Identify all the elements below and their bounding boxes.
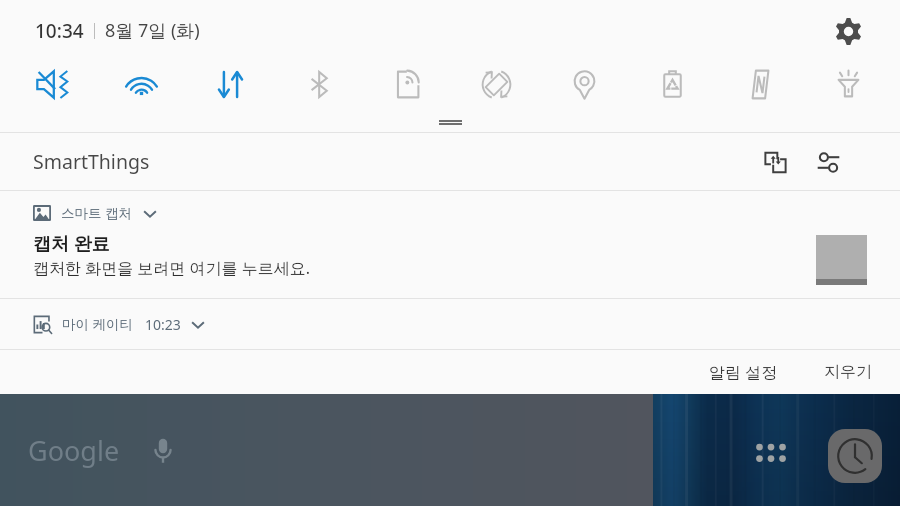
staticText: 10:34 bbox=[35, 18, 84, 44]
button[interactable]: Sound mode bbox=[8, 61, 97, 107]
staticText: 10:23 bbox=[145, 315, 181, 334]
button[interactable]: Bluetooth bbox=[275, 61, 364, 107]
staticText: Google bbox=[28, 432, 120, 469]
staticText: 캡처 완료 bbox=[33, 231, 110, 256]
staticText: 알림 설정 bbox=[709, 361, 778, 383]
button[interactable]: Location bbox=[540, 61, 628, 107]
staticText: 스마트 캡처 bbox=[61, 204, 133, 222]
staticText: 캡처한 화면을 보려면 여기를 누르세요. bbox=[33, 257, 310, 279]
button[interactable]: Smart View bbox=[364, 61, 452, 107]
button[interactable]: Clock bbox=[828, 429, 882, 483]
button[interactable]: 지우기 bbox=[808, 352, 888, 392]
staticText: SmartThings bbox=[33, 148, 150, 175]
button[interactable]: Quick settings bbox=[809, 143, 847, 181]
button[interactable]: Transfer bbox=[756, 143, 794, 181]
button[interactable]: Flashlight bbox=[804, 61, 892, 107]
button[interactable]: Settings bbox=[829, 12, 867, 50]
staticText: 8월 7일 (화) bbox=[105, 18, 200, 43]
button[interactable]: Wi-Fi bbox=[97, 61, 186, 107]
button[interactable]: Apps bbox=[745, 430, 797, 482]
button[interactable]: Power saving mode bbox=[628, 61, 716, 107]
button[interactable]: NFC bbox=[716, 61, 804, 107]
staticText: 지우기 bbox=[824, 362, 872, 382]
button[interactable]: Auto rotate bbox=[452, 61, 540, 107]
button[interactable]: 마이 케이티 bbox=[0, 299, 900, 349]
button[interactable]: 알림 설정 bbox=[693, 351, 794, 393]
staticText: 마이 케이티 bbox=[62, 315, 134, 333]
button[interactable]: 스마트 캡처 bbox=[0, 191, 900, 298]
button[interactable]: Voice search bbox=[146, 434, 180, 468]
button[interactable]: Mobile data bbox=[186, 61, 275, 107]
button[interactable]: Google search bbox=[28, 432, 120, 469]
